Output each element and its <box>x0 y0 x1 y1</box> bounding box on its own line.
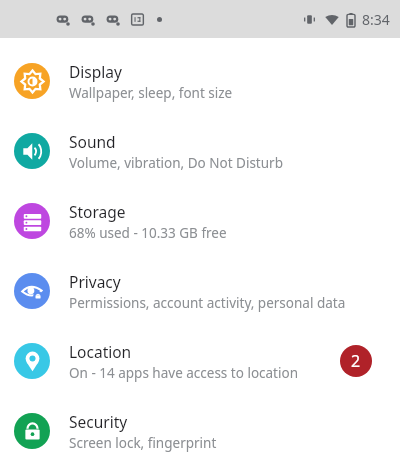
staticText: Permissions, account activity, personal … <box>69 294 346 312</box>
staticText: 8:34 <box>362 10 390 29</box>
staticText: 68% used - 10.33 GB free <box>69 224 227 242</box>
staticText: On - 14 apps have access to location <box>69 364 298 382</box>
staticText: Storage <box>69 201 126 222</box>
button[interactable]: Location <box>0 326 400 396</box>
staticText: 2 <box>351 350 361 372</box>
staticText: Display <box>69 61 122 82</box>
staticText: Security <box>69 411 128 432</box>
staticText: Volume, vibration, Do Not Disturb <box>69 154 283 172</box>
staticText: Screen lock, fingerprint <box>69 434 217 452</box>
button[interactable]: Notifications: 2 <box>340 345 372 377</box>
button[interactable]: Display <box>0 46 400 116</box>
button[interactable]: Privacy <box>0 256 400 326</box>
button[interactable]: Security <box>0 396 400 466</box>
staticText: Wallpaper, sleep, font size <box>69 84 233 102</box>
button[interactable]: Storage <box>0 186 400 256</box>
staticText: Sound <box>69 131 116 152</box>
staticText: Location <box>69 341 132 362</box>
button[interactable]: Sound <box>0 116 400 186</box>
staticText: Privacy <box>69 271 121 292</box>
